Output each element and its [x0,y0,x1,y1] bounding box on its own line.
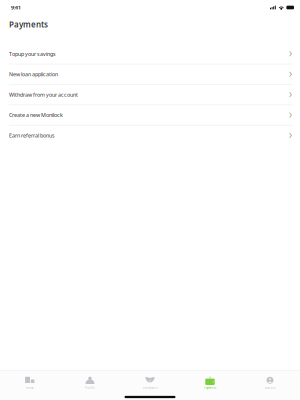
button[interactable]: Home [0,374,60,391]
staticText: Earn referral bonus [9,132,55,139]
button[interactable]: Withdraw from your account [0,85,300,104]
button[interactable]: Earn referral bonus [0,126,300,145]
staticText: 9:41 [11,4,21,11]
button[interactable]: Create a new Monilock [0,105,300,125]
staticText: Payments [9,19,48,30]
staticText: Create a new Monilock [9,111,63,119]
staticText: Payments [204,386,216,390]
staticText: Account [264,386,275,390]
staticText: Home [26,386,34,390]
staticText: Profile [85,386,95,390]
button[interactable]: New loan application [0,64,300,84]
staticText: Investment [142,386,157,390]
staticText: Withdraw from your account [9,91,78,98]
staticText: Topup your savings [9,50,56,57]
button[interactable]: Payments [180,374,240,391]
button[interactable]: Profile [60,374,120,391]
button[interactable]: Topup your savings [0,44,300,64]
button[interactable]: Account [240,374,300,391]
staticText: New loan application [9,71,58,78]
button[interactable]: Investment [120,374,180,391]
